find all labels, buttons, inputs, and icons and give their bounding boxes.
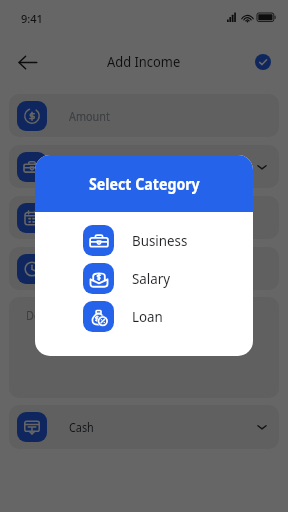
staticText: Description (26, 307, 84, 323)
button[interactable]: Amount (9, 94, 279, 137)
staticText: Loan (132, 306, 163, 326)
staticText: Cash (69, 419, 94, 435)
button[interactable]: Date (9, 196, 279, 239)
button[interactable]: Save (247, 46, 279, 78)
button[interactable]: Business (35, 221, 253, 259)
button[interactable]: Time (9, 247, 279, 290)
staticText: Time (69, 261, 94, 277)
button[interactable]: Category (9, 145, 279, 188)
staticText: Business (132, 230, 188, 250)
staticText: Amount (69, 108, 110, 124)
button[interactable]: Description (9, 297, 279, 398)
button[interactable]: Salary (35, 259, 253, 297)
staticText: 9:41 (21, 11, 43, 26)
staticText: Add Income (107, 51, 181, 71)
staticText: Select Category (89, 172, 200, 194)
button[interactable]: Cash (9, 405, 279, 449)
staticText: Salary (132, 268, 171, 288)
staticText: Date (69, 210, 93, 226)
button[interactable]: Loan (35, 297, 253, 335)
button[interactable]: Back (10, 45, 44, 79)
